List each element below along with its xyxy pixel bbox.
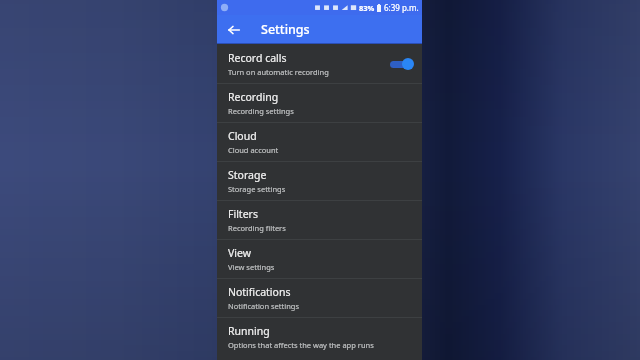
staticText: View bbox=[228, 246, 251, 260]
staticText: 6:39 p.m. bbox=[384, 2, 419, 13]
staticText: Notification settings bbox=[228, 301, 299, 311]
staticText: Options that affects the way the app run… bbox=[228, 340, 374, 350]
staticText: Turn on automatic recording bbox=[228, 67, 329, 77]
staticText: Cloud bbox=[228, 129, 257, 143]
button[interactable]: Record calls toggle bbox=[388, 55, 414, 73]
button[interactable]: Record calls bbox=[217, 44, 422, 83]
button[interactable]: View bbox=[217, 240, 422, 278]
staticText: Recording bbox=[228, 90, 279, 104]
staticText: Recording settings bbox=[228, 106, 294, 116]
staticText: Filters bbox=[228, 207, 258, 221]
staticText: View settings bbox=[228, 262, 275, 272]
staticText: Running bbox=[228, 324, 270, 338]
staticText: Record calls bbox=[228, 51, 287, 65]
button[interactable]: Notifications bbox=[217, 279, 422, 317]
staticText: Recording filters bbox=[228, 223, 286, 233]
button[interactable]: Back bbox=[225, 21, 243, 39]
button[interactable]: Filters bbox=[217, 201, 422, 239]
button[interactable]: Recording bbox=[217, 84, 422, 122]
button[interactable]: Running bbox=[217, 318, 422, 356]
staticText: Storage bbox=[228, 168, 267, 182]
staticText: Storage settings bbox=[228, 184, 286, 194]
staticText: 83% bbox=[359, 3, 375, 13]
staticText: Cloud account bbox=[228, 145, 279, 155]
staticText: Settings bbox=[261, 21, 310, 38]
button[interactable]: Back bbox=[217, 15, 422, 44]
staticText: Notifications bbox=[228, 285, 291, 299]
button[interactable]: Storage bbox=[217, 162, 422, 200]
button[interactable]: Cloud bbox=[217, 123, 422, 161]
